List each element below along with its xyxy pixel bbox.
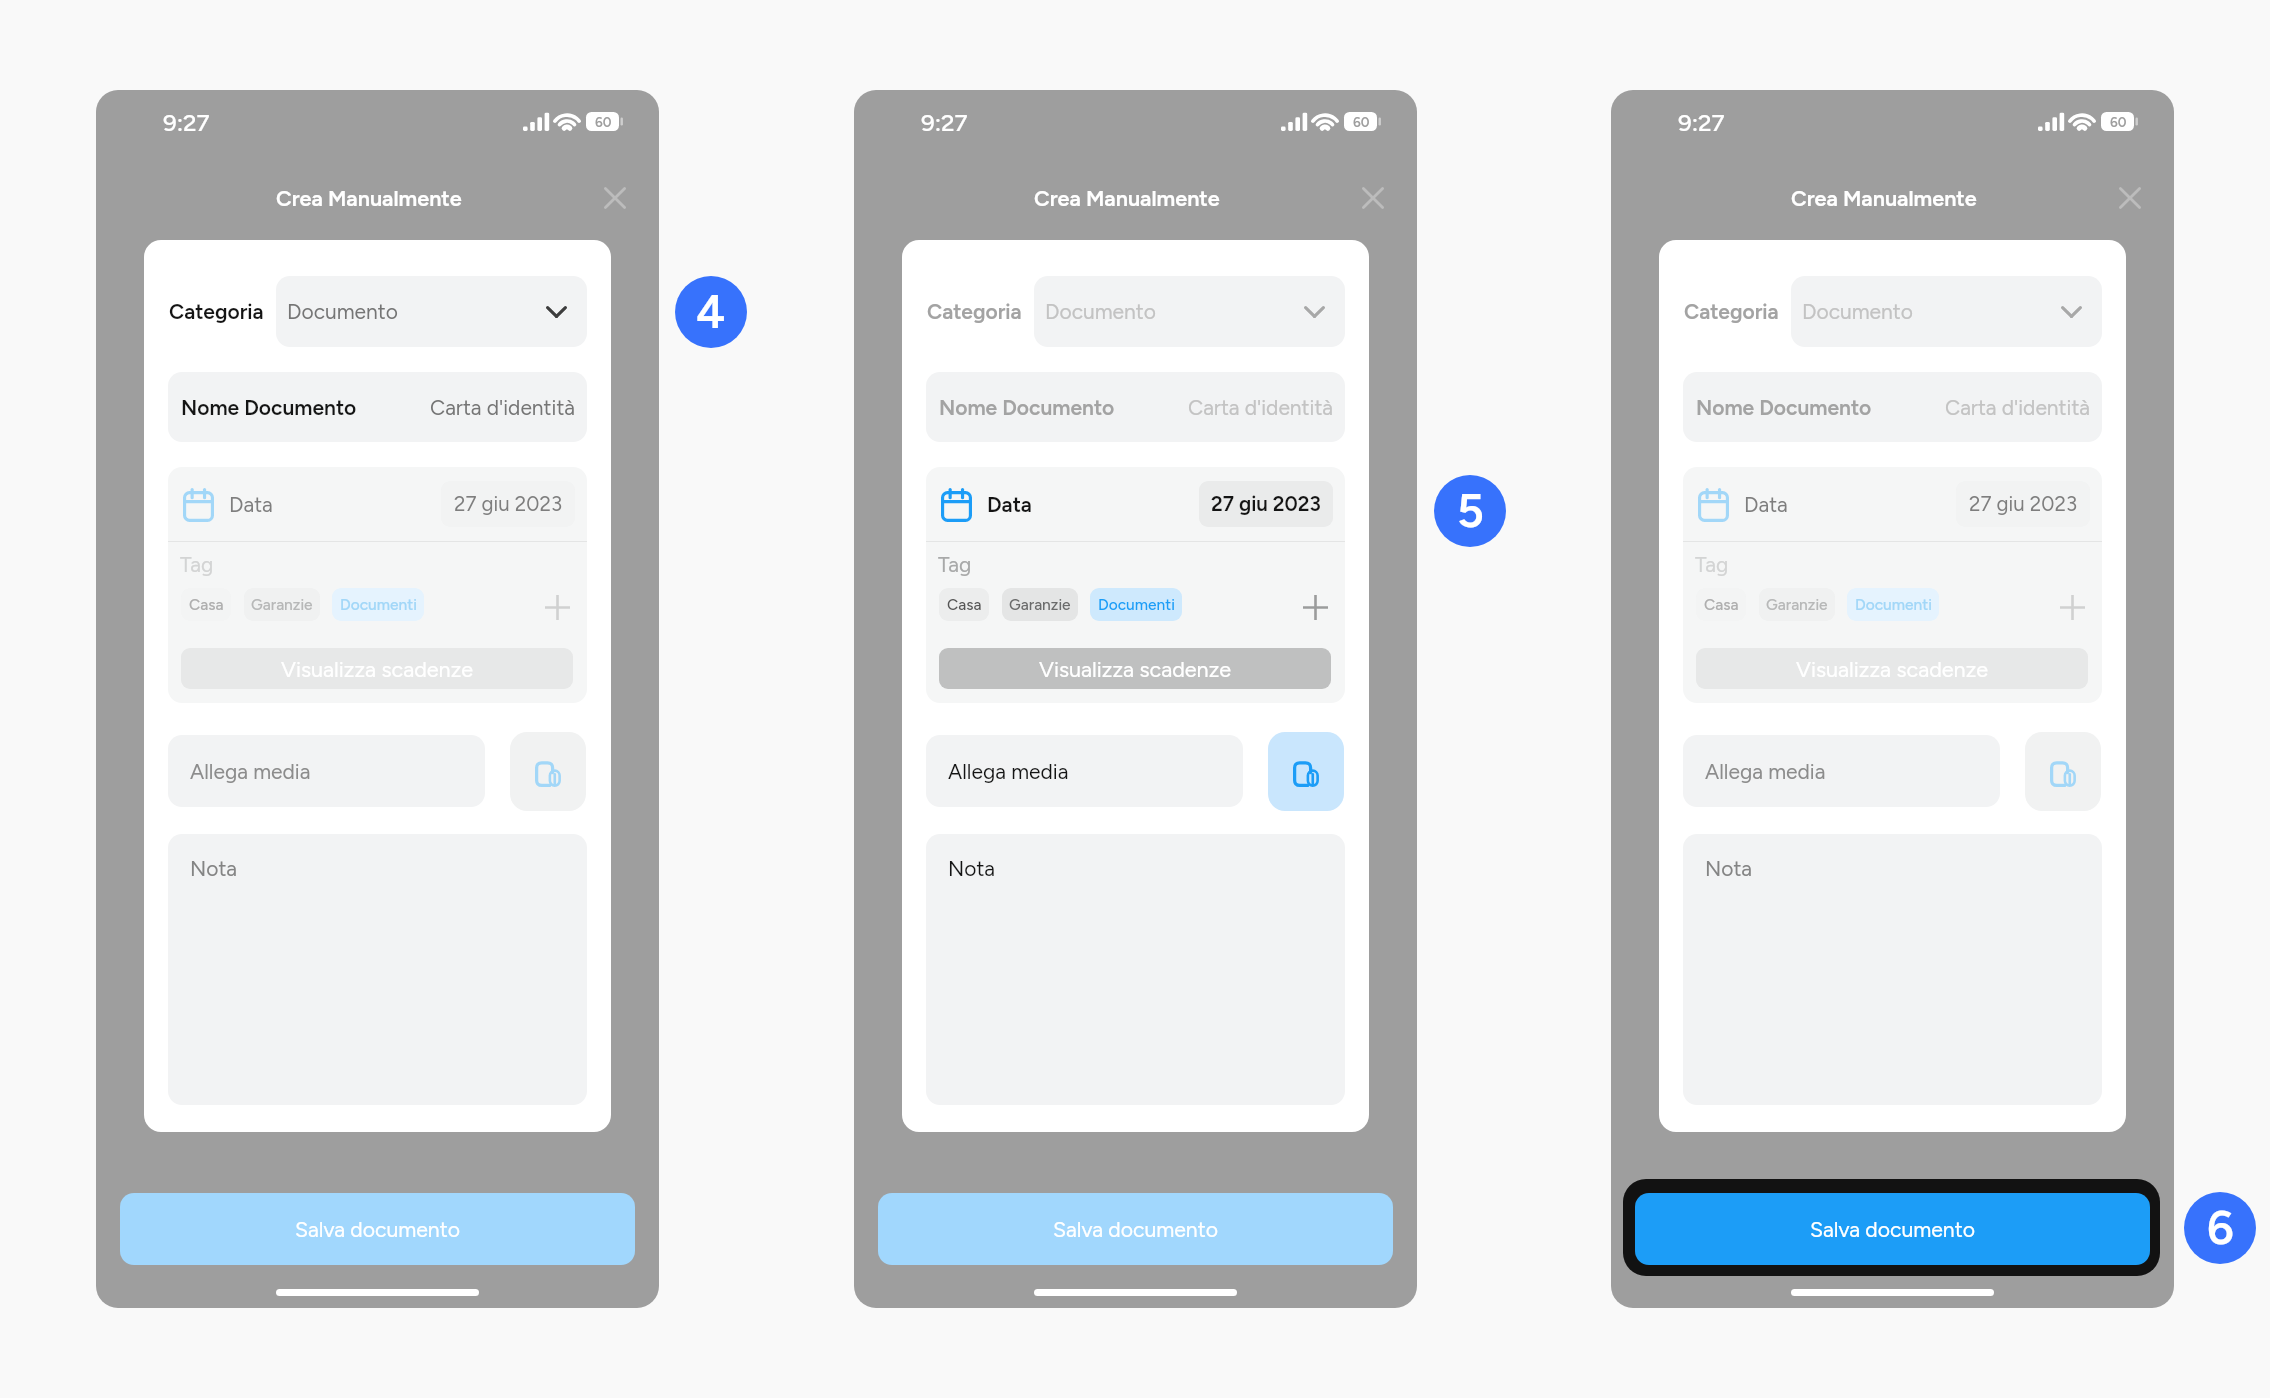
button[interactable]: Salva documento (878, 1193, 1393, 1265)
staticText: 60 (2110, 114, 2127, 130)
button[interactable]: Aggiungi tag (535, 585, 579, 629)
staticText: Tag (1695, 552, 1729, 577)
staticText: Documenti (340, 595, 417, 614)
staticText: Documento (1802, 299, 1913, 324)
staticText: Carta d'identità (430, 395, 575, 420)
button[interactable]: Allega file (2025, 732, 2101, 811)
staticText: 27 giu 2023 (1211, 492, 1321, 517)
staticText: 27 giu 2023 (1969, 492, 2078, 517)
staticText: Garanzie (1766, 595, 1828, 614)
staticText: 9:27 (921, 108, 968, 137)
button[interactable]: Visualizza scadenze (939, 648, 1331, 689)
staticText: 60 (595, 114, 612, 130)
staticText: 9:27 (1678, 108, 1725, 137)
staticText: Garanzie (1009, 595, 1071, 614)
staticText: 9:27 (163, 108, 210, 137)
staticText: Categoria (1684, 299, 1779, 324)
button[interactable]: Documenti (1090, 588, 1182, 621)
button[interactable]: Documento (1034, 276, 1345, 347)
button[interactable]: Allega media (168, 735, 485, 807)
button[interactable]: Casa (939, 588, 989, 621)
button[interactable]: Chiudi (1351, 176, 1395, 220)
staticText: Salva documento (1810, 1217, 1975, 1242)
button[interactable]: 27 giu 2023 (1956, 481, 2090, 527)
button[interactable]: Documenti (332, 588, 424, 621)
staticText: Carta d'identità (1945, 395, 2090, 420)
staticText: Documento (287, 299, 398, 324)
staticText: Tag (938, 552, 972, 577)
staticText: Casa (189, 595, 224, 614)
staticText: 60 (1353, 114, 1370, 130)
button[interactable]: Casa (181, 588, 231, 621)
staticText: 27 giu 2023 (454, 492, 563, 517)
button[interactable]: Garanzie (1759, 588, 1835, 621)
staticText: Tag (180, 552, 214, 577)
staticText: Crea Manualmente (1791, 185, 1977, 211)
button[interactable]: Visualizza scadenze (181, 648, 573, 689)
button[interactable]: Salva documento (120, 1193, 635, 1265)
button[interactable]: 27 giu 2023 (441, 481, 575, 527)
staticText: Documenti (1855, 595, 1932, 614)
staticText: Documenti (1098, 595, 1175, 614)
staticText: Carta d'identità (1188, 395, 1333, 420)
staticText: Visualizza scadenze (1796, 656, 1989, 682)
button[interactable]: Allega media (926, 735, 1243, 807)
staticText: Allega media (948, 759, 1069, 784)
staticText: Allega media (1705, 759, 1826, 784)
button[interactable]: Casa (1696, 588, 1746, 621)
button[interactable]: Allega media (1683, 735, 2000, 807)
staticText: Visualizza scadenze (281, 656, 474, 682)
button[interactable]: Salva documento (1635, 1193, 2150, 1265)
staticText: Allega media (190, 759, 311, 784)
button[interactable]: Documento (276, 276, 587, 347)
button[interactable]: Documento (1791, 276, 2102, 347)
staticText: Salva documento (1053, 1217, 1218, 1242)
staticText: Nota (1705, 856, 1753, 881)
staticText: Garanzie (251, 595, 313, 614)
button[interactable]: Documenti (1847, 588, 1939, 621)
staticText: 6 (2207, 1200, 2234, 1256)
staticText: Crea Manualmente (1034, 185, 1220, 211)
staticText: Categoria (927, 299, 1022, 324)
staticText: Nota (190, 856, 238, 881)
staticText: 5 (1457, 483, 1484, 539)
staticText: Data (229, 492, 273, 517)
staticText: Nota (948, 856, 996, 881)
staticText: Crea Manualmente (276, 185, 462, 211)
staticText: Data (987, 492, 1032, 517)
staticText: Casa (947, 595, 982, 614)
button[interactable]: Visualizza scadenze (1696, 648, 2088, 689)
staticText: Nome Documento (181, 395, 357, 420)
staticText: Categoria (169, 299, 264, 324)
staticText: Visualizza scadenze (1039, 656, 1232, 682)
button[interactable]: Nome Documento (926, 372, 1345, 442)
button[interactable]: Nota (926, 834, 1345, 1105)
button[interactable]: Allega file (1268, 732, 1344, 811)
button[interactable]: Garanzie (1002, 588, 1078, 621)
button[interactable]: Garanzie (244, 588, 320, 621)
button[interactable]: Nota (1683, 834, 2102, 1105)
staticText: Documento (1045, 299, 1156, 324)
staticText: 4 (696, 284, 726, 340)
staticText: Casa (1704, 595, 1739, 614)
button[interactable]: Allega file (510, 732, 586, 811)
staticText: Nome Documento (939, 395, 1115, 420)
staticText: Nome Documento (1696, 395, 1872, 420)
button[interactable]: Nome Documento (1683, 372, 2102, 442)
staticText: Data (1744, 492, 1788, 517)
button[interactable]: 27 giu 2023 (1199, 481, 1333, 527)
button[interactable]: Nome Documento (168, 372, 587, 442)
button[interactable]: Chiudi (2108, 176, 2152, 220)
button[interactable]: Aggiungi tag (2050, 585, 2094, 629)
button[interactable]: Aggiungi tag (1293, 585, 1337, 629)
button[interactable]: Chiudi (593, 176, 637, 220)
staticText: Salva documento (295, 1217, 460, 1242)
button[interactable]: Nota (168, 834, 587, 1105)
